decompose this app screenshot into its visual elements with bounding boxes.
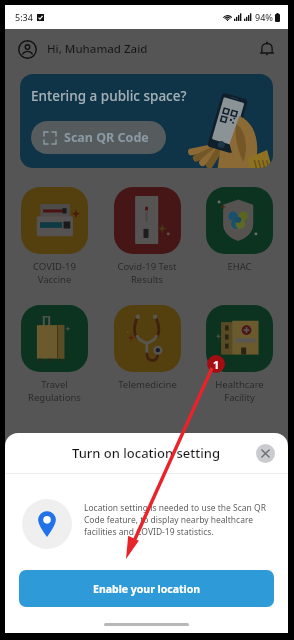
button[interactable]: Enable your location [19, 570, 274, 607]
button[interactable]: Notifications [259, 41, 275, 57]
button[interactable]: Covid-19 Test Results [104, 187, 190, 286]
staticText: Hi, Muhamad Zaid [47, 41, 148, 57]
staticText: COVID-19 Vaccine [33, 260, 76, 286]
staticText: Entering a public space? [31, 87, 187, 105]
staticText: Scan QR Code [64, 129, 149, 146]
button[interactable]: Profile [18, 40, 37, 59]
button[interactable]: EHAC [196, 187, 282, 273]
staticText: Telemedicine [118, 378, 177, 391]
staticText: Location setting is needed to use the Sc… [84, 502, 276, 538]
button[interactable]: Scan QR Code [31, 121, 166, 154]
staticText: Enable your location [93, 582, 201, 596]
button[interactable]: Close [256, 444, 275, 463]
button[interactable]: Healthcare Facility [196, 305, 282, 404]
staticText: Covid-19 Test Results [117, 260, 177, 286]
staticText: Turn on location setting [72, 444, 221, 462]
staticText: Healthcare Facility [215, 378, 264, 404]
button[interactable]: COVID-19 Vaccine [11, 187, 97, 286]
staticText: EHAC [227, 260, 252, 273]
button[interactable]: Telemedicine [104, 305, 190, 391]
staticText: 5:34 [15, 11, 33, 23]
button[interactable]: Travel Regulations [11, 305, 97, 404]
staticText: Travel Regulations [28, 378, 81, 404]
staticText: 1 [213, 357, 220, 372]
staticText: 94% [255, 11, 273, 23]
